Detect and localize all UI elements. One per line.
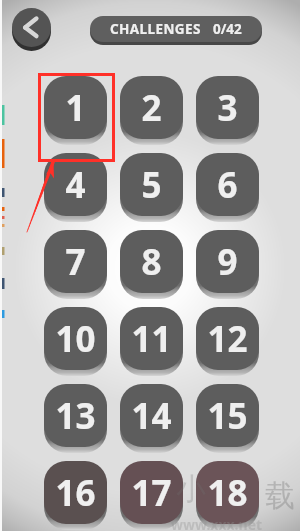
staticText: 0/42 [213,20,242,38]
staticText: 10 [55,315,96,363]
button[interactable]: 2 [120,76,183,139]
staticText: 3 [217,84,238,132]
button[interactable]: 1 [44,76,107,139]
button[interactable]: 6 [196,153,259,216]
staticText: 载 [265,477,295,515]
button[interactable]: 15 [196,384,259,447]
button[interactable]: 10 [44,307,107,370]
button[interactable]: 3 [196,76,259,139]
staticText: 11 [131,315,172,363]
button[interactable]: 9 [196,230,259,293]
button[interactable]: 4 [44,153,107,216]
staticText: 7 [65,238,86,286]
button[interactable]: 12 [196,307,259,370]
staticText: CHALLENGES [110,20,201,38]
button[interactable]: 17 [120,461,183,524]
button[interactable]: 11 [120,307,183,370]
staticText: 16 [55,469,96,517]
staticText: 13 [55,392,96,440]
staticText: 2 [141,84,162,132]
staticText: 4 [65,161,86,209]
button[interactable]: Back [12,8,51,47]
button[interactable]: 5 [120,153,183,216]
button[interactable]: 13 [44,384,107,447]
button[interactable]: 8 [120,230,183,293]
staticText: 17 [131,469,172,517]
button[interactable]: 16 [44,461,107,524]
staticText: 6 [217,161,238,209]
button[interactable]: CHALLENGES [90,16,262,42]
staticText: 18 [207,469,248,517]
button[interactable]: 14 [120,384,183,447]
staticText: 15 [207,392,248,440]
staticText: 小 [176,470,206,508]
staticText: www.xxx.net [171,515,263,531]
staticText: 12 [207,315,248,363]
staticText: 1 [65,84,86,132]
staticText: 8 [141,238,162,286]
staticText: 5 [141,161,162,209]
staticText: 14 [131,392,172,440]
button[interactable]: 7 [44,230,107,293]
staticText: 9 [217,238,238,286]
button[interactable]: 18 [196,461,259,524]
